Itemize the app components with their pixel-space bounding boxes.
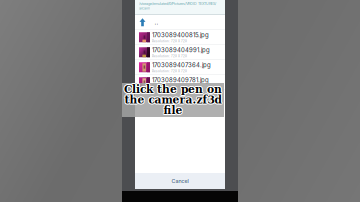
staticText: Click the pen on — [124, 84, 222, 96]
staticText: file — [164, 103, 183, 116]
staticText: Click the pen on — [125, 82, 223, 95]
staticText: Click the pen on — [124, 83, 222, 95]
button[interactable]: 1703089404991.jpg — [135, 45, 225, 59]
staticText: Click the pen on — [124, 82, 222, 95]
staticText: Click the pen on — [123, 82, 221, 95]
staticText: Click the pen on — [123, 83, 221, 95]
staticText: file — [163, 103, 182, 116]
staticText: the camera.zf3d — [124, 93, 221, 105]
staticText: 1703089404991.jpg — [152, 46, 210, 54]
staticText: the camera.zf3d — [124, 93, 221, 105]
staticText: 1703089400815.jpg — [152, 31, 209, 39]
staticText: Click the pen on — [125, 84, 223, 96]
staticText: the camera.zf3d — [124, 93, 221, 106]
staticText: file — [163, 104, 182, 116]
staticText: Resolution: 720 X 720 — [152, 84, 187, 88]
staticText: Resolution: 720 X 720 — [152, 54, 187, 58]
staticText: the camera.zf3d — [124, 93, 221, 106]
staticText: Cancel — [171, 178, 188, 184]
staticText: arcaim — [139, 6, 150, 10]
staticText: Resolution: 720 X 720 — [152, 69, 187, 73]
button[interactable]: 1703089407364.jpg — [135, 60, 225, 74]
staticText: file — [164, 104, 183, 116]
staticText: the camera.zf3d — [125, 94, 222, 107]
staticText: file — [163, 105, 182, 117]
staticText: the camera.zf3d — [125, 93, 222, 106]
staticText: .. — [154, 19, 158, 26]
staticText: Click the pen on — [123, 84, 221, 96]
staticText: Resolution: 720 X 720 — [152, 39, 187, 43]
staticText: 1703089409781.jpg — [152, 76, 209, 84]
staticText: Click the pen on — [125, 83, 223, 95]
staticText: file — [163, 104, 182, 116]
staticText: the camera.zf3d — [125, 93, 222, 105]
staticText: the camera.zf3d — [124, 94, 221, 107]
staticText: the camera.zf3d — [124, 94, 221, 107]
staticText: /storage/emulated/0/Pictures/VROID TEXTU… — [139, 2, 216, 6]
button[interactable]: .. — [135, 15, 225, 29]
button[interactable]: Cancel — [135, 173, 225, 189]
staticText: file — [163, 103, 182, 116]
button[interactable]: 1703089409781.jpg — [135, 75, 225, 89]
button[interactable]: 1703089400815.jpg — [135, 30, 225, 44]
staticText: file — [163, 105, 182, 117]
staticText: file — [164, 105, 183, 117]
staticText: 1703089407364.jpg — [152, 61, 211, 69]
